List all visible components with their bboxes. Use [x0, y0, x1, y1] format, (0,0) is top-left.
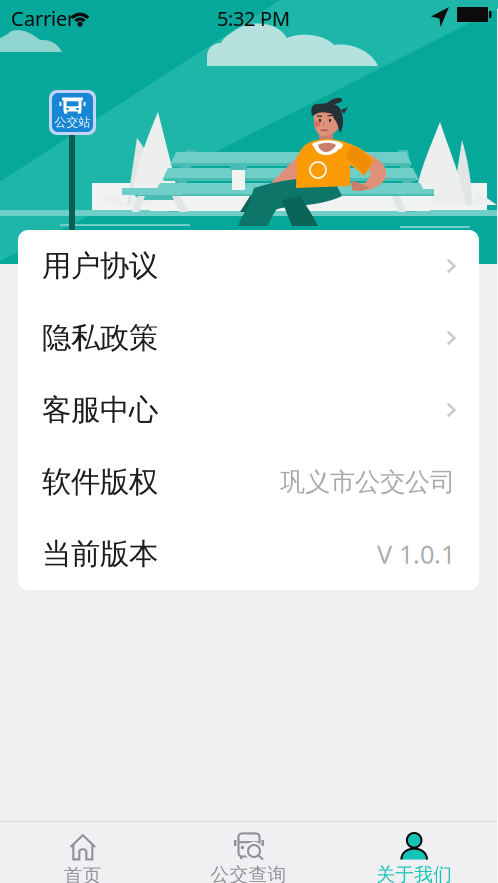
- staticText: 隐私政策: [42, 320, 158, 356]
- staticText: 公交站: [54, 115, 90, 130]
- button[interactable]: 公交查询: [166, 822, 331, 883]
- staticText: 关于我们: [376, 863, 452, 883]
- button[interactable]: 用户协议: [18, 230, 479, 302]
- button[interactable]: 当前版本: [18, 518, 479, 590]
- staticText: 用户协议: [42, 248, 158, 284]
- staticText: 巩义市公交公司: [280, 466, 455, 497]
- button[interactable]: 客服中心: [18, 374, 479, 446]
- staticText: 首页: [64, 864, 102, 883]
- staticText: Carrier: [11, 5, 75, 32]
- button[interactable]: 软件版权: [18, 446, 479, 518]
- staticText: 软件版权: [42, 464, 158, 500]
- staticText: 公交查询: [210, 863, 286, 883]
- button[interactable]: 隐私政策: [18, 302, 479, 374]
- staticText: 5:32 PM: [217, 5, 290, 32]
- staticText: 当前版本: [42, 536, 158, 572]
- staticText: V 1.0.1: [377, 537, 455, 571]
- button[interactable]: 首页: [0, 822, 166, 883]
- staticText: 客服中心: [42, 392, 158, 428]
- button[interactable]: 关于我们: [331, 822, 497, 883]
